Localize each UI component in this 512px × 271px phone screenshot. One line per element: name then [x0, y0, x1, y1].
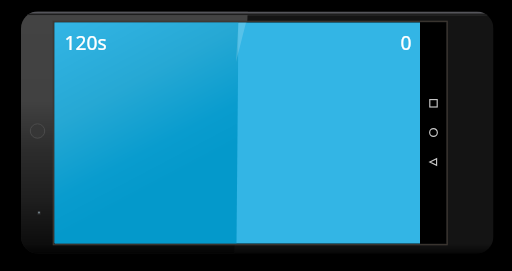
button[interactable]: Timer	[0, 0, 512, 271]
